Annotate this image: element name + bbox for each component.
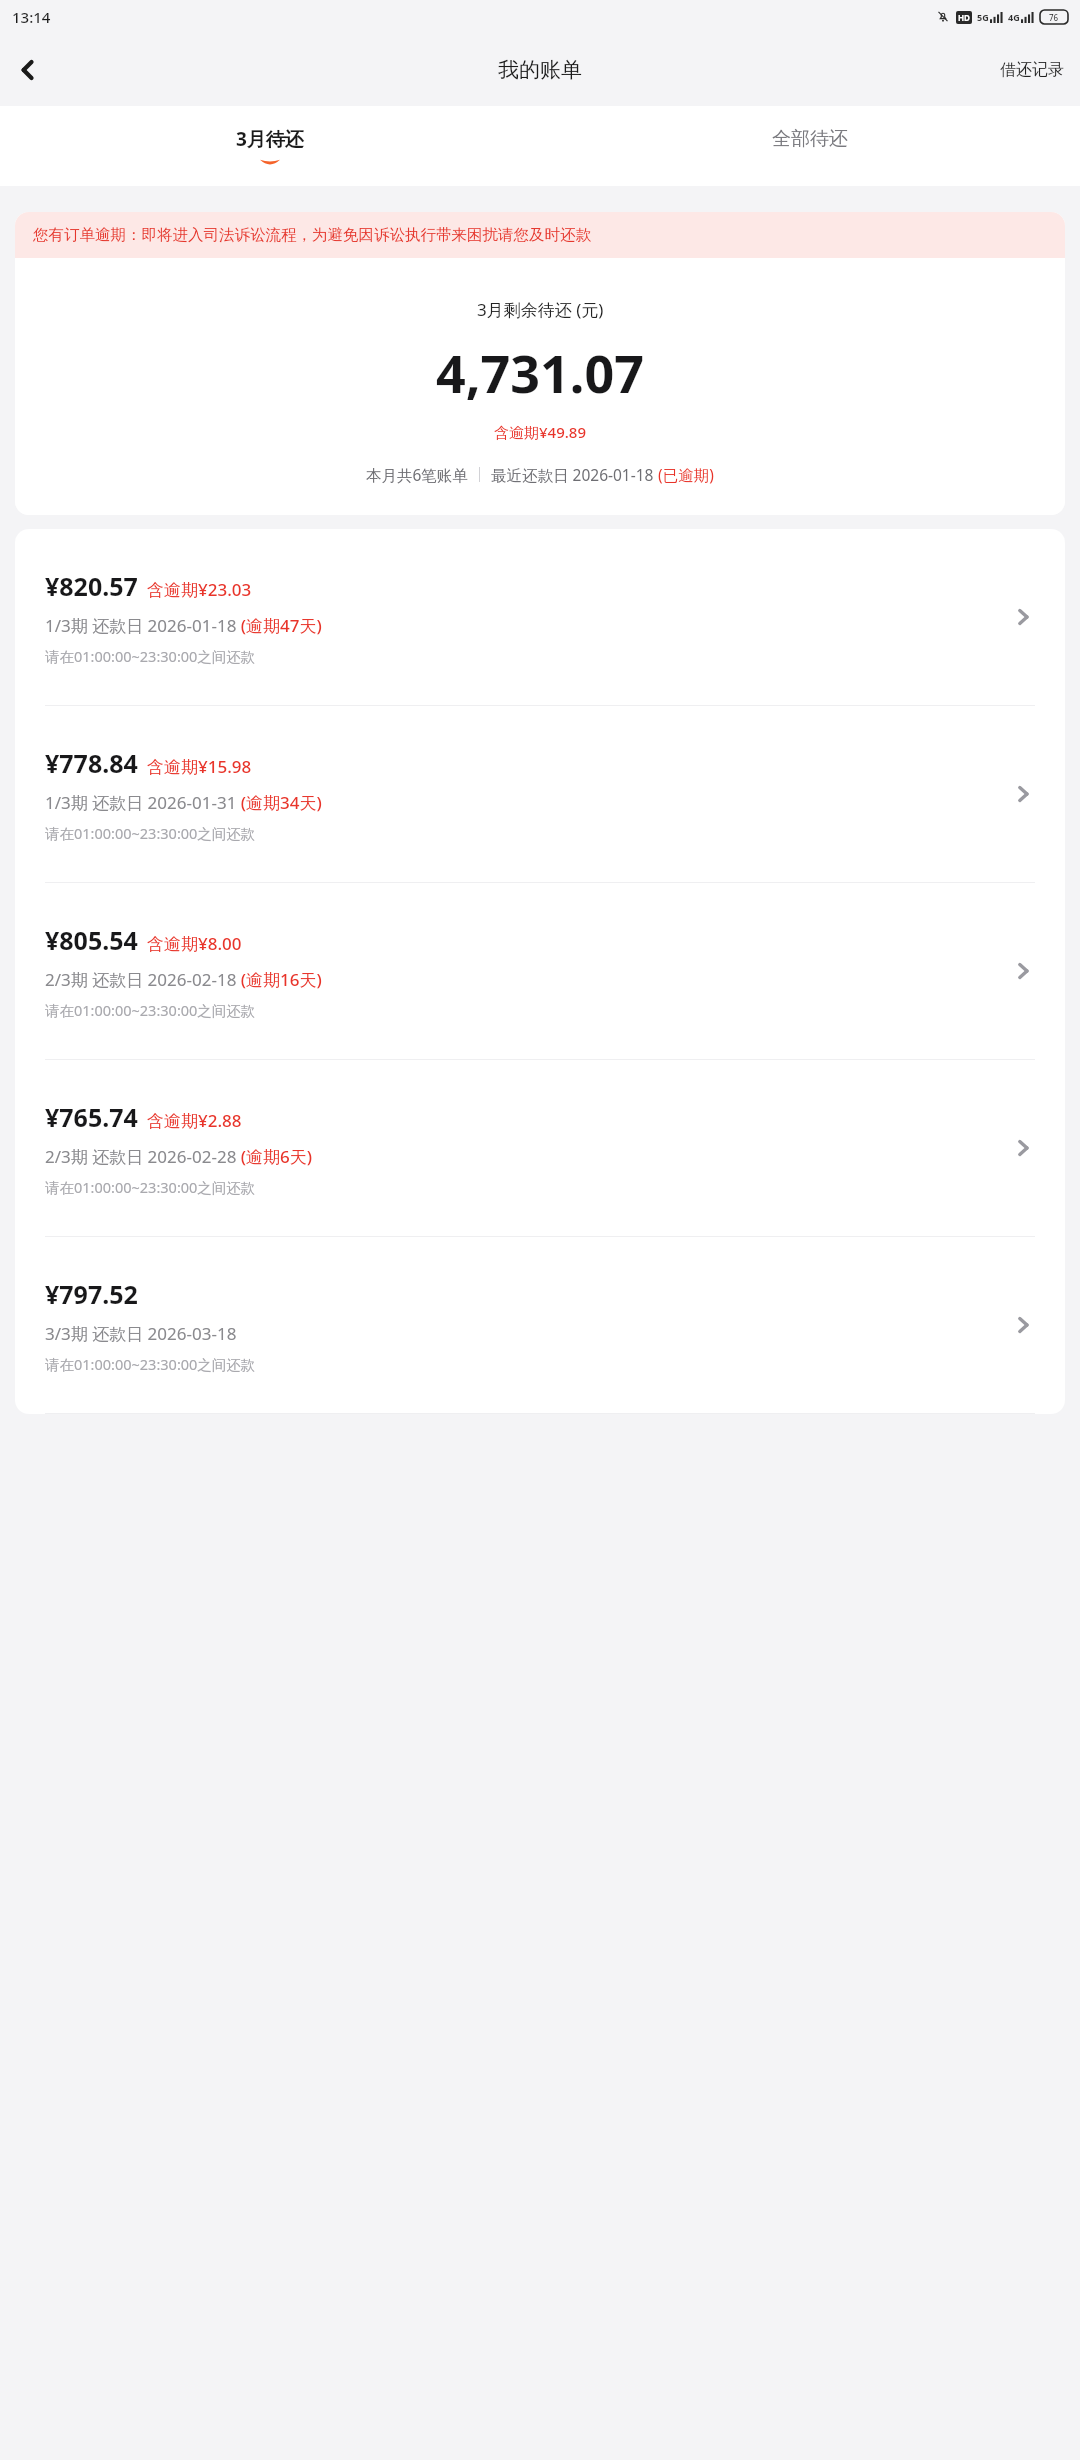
staticText: (已逾期) [658, 464, 714, 485]
staticText: 76 [1049, 12, 1059, 23]
staticText: 3月待还 [236, 126, 304, 152]
staticText: 2/3期 还款日 2026-02-18 (逾期16天) [45, 968, 322, 991]
staticText: 本月共6笔账单 [366, 464, 468, 485]
staticText: ¥765.74 [45, 1100, 138, 1134]
staticText: 含逾期¥8.00 [147, 932, 242, 955]
staticText: 1/3期 还款日 2026-01-18 (逾期47天) [45, 614, 322, 637]
staticText: 1/3期 还款日 2026-01-31 (逾期34天) [45, 791, 322, 814]
staticText: ¥805.54 [45, 923, 138, 957]
staticText: 请在01:00:00~23:30:00之间还款 [45, 646, 256, 666]
staticText: 请在01:00:00~23:30:00之间还款 [45, 1177, 256, 1197]
staticText: 4,731.07 [436, 337, 644, 408]
staticText: 最近还款日 2026-01-18 [491, 464, 658, 485]
button[interactable]: 全部待还 [540, 106, 1080, 186]
staticText: 2/3期 还款日 2026-02-28 (逾期6天) [45, 1145, 313, 1168]
button[interactable]: ¥820.57 [15, 529, 1065, 705]
staticText: 13:14 [12, 7, 51, 27]
button[interactable]: ¥797.52 [15, 1237, 1065, 1413]
staticText: ¥778.84 [45, 746, 138, 780]
staticText: 请在01:00:00~23:30:00之间还款 [45, 1354, 256, 1374]
staticText: 4G [1008, 11, 1020, 23]
button[interactable]: ¥765.74 [15, 1060, 1065, 1236]
button[interactable]: 返回 [0, 42, 56, 98]
staticText: 您有订单逾期：即将进入司法诉讼流程，为避免因诉讼执行带来困扰请您及时还款 [33, 225, 591, 245]
staticText: 借还记录 [1000, 60, 1064, 80]
staticText: 含逾期¥49.89 [494, 422, 586, 442]
staticText: 含逾期¥15.98 [147, 755, 252, 778]
button[interactable]: 借还记录 [984, 50, 1080, 90]
button[interactable]: ¥778.84 [15, 706, 1065, 882]
staticText: ¥820.57 [45, 569, 138, 603]
staticText: 5G [977, 11, 989, 23]
staticText: ¥797.52 [45, 1277, 138, 1311]
staticText: 3月剩余待还 (元) [477, 298, 604, 321]
button[interactable]: ¥805.54 [15, 883, 1065, 1059]
staticText: 请在01:00:00~23:30:00之间还款 [45, 1000, 256, 1020]
staticText: HD [958, 12, 970, 23]
staticText: 含逾期¥2.88 [147, 1109, 242, 1132]
staticText: 我的账单 [498, 57, 582, 83]
staticText: 全部待还 [772, 127, 848, 151]
staticText: 含逾期¥23.03 [147, 578, 252, 601]
staticText: 请在01:00:00~23:30:00之间还款 [45, 823, 256, 843]
staticText: 3/3期 还款日 2026-03-18 [45, 1322, 237, 1345]
button[interactable]: 3月待还 [0, 106, 540, 186]
